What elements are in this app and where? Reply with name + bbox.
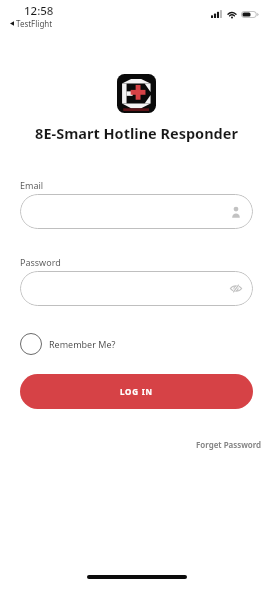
staticText: Forget Password <box>196 439 262 450</box>
staticText: 8E-Smart Hotline Responder <box>0 123 273 143</box>
staticText: Password <box>20 256 61 268</box>
staticText: Email <box>20 179 44 191</box>
staticText: LOG IN <box>120 386 153 397</box>
button[interactable]: Forget Password <box>196 439 262 450</box>
staticText: 12:58 <box>24 3 54 19</box>
button[interactable]: Remember Me? <box>20 332 116 355</box>
staticText: Remember Me? <box>49 338 116 350</box>
staticText: TestFlight <box>16 18 53 29</box>
button[interactable]: Show password <box>20 271 253 306</box>
button[interactable]: LOG IN <box>20 374 253 409</box>
button[interactable]: Show password <box>230 284 242 293</box>
button[interactable] <box>20 194 253 229</box>
